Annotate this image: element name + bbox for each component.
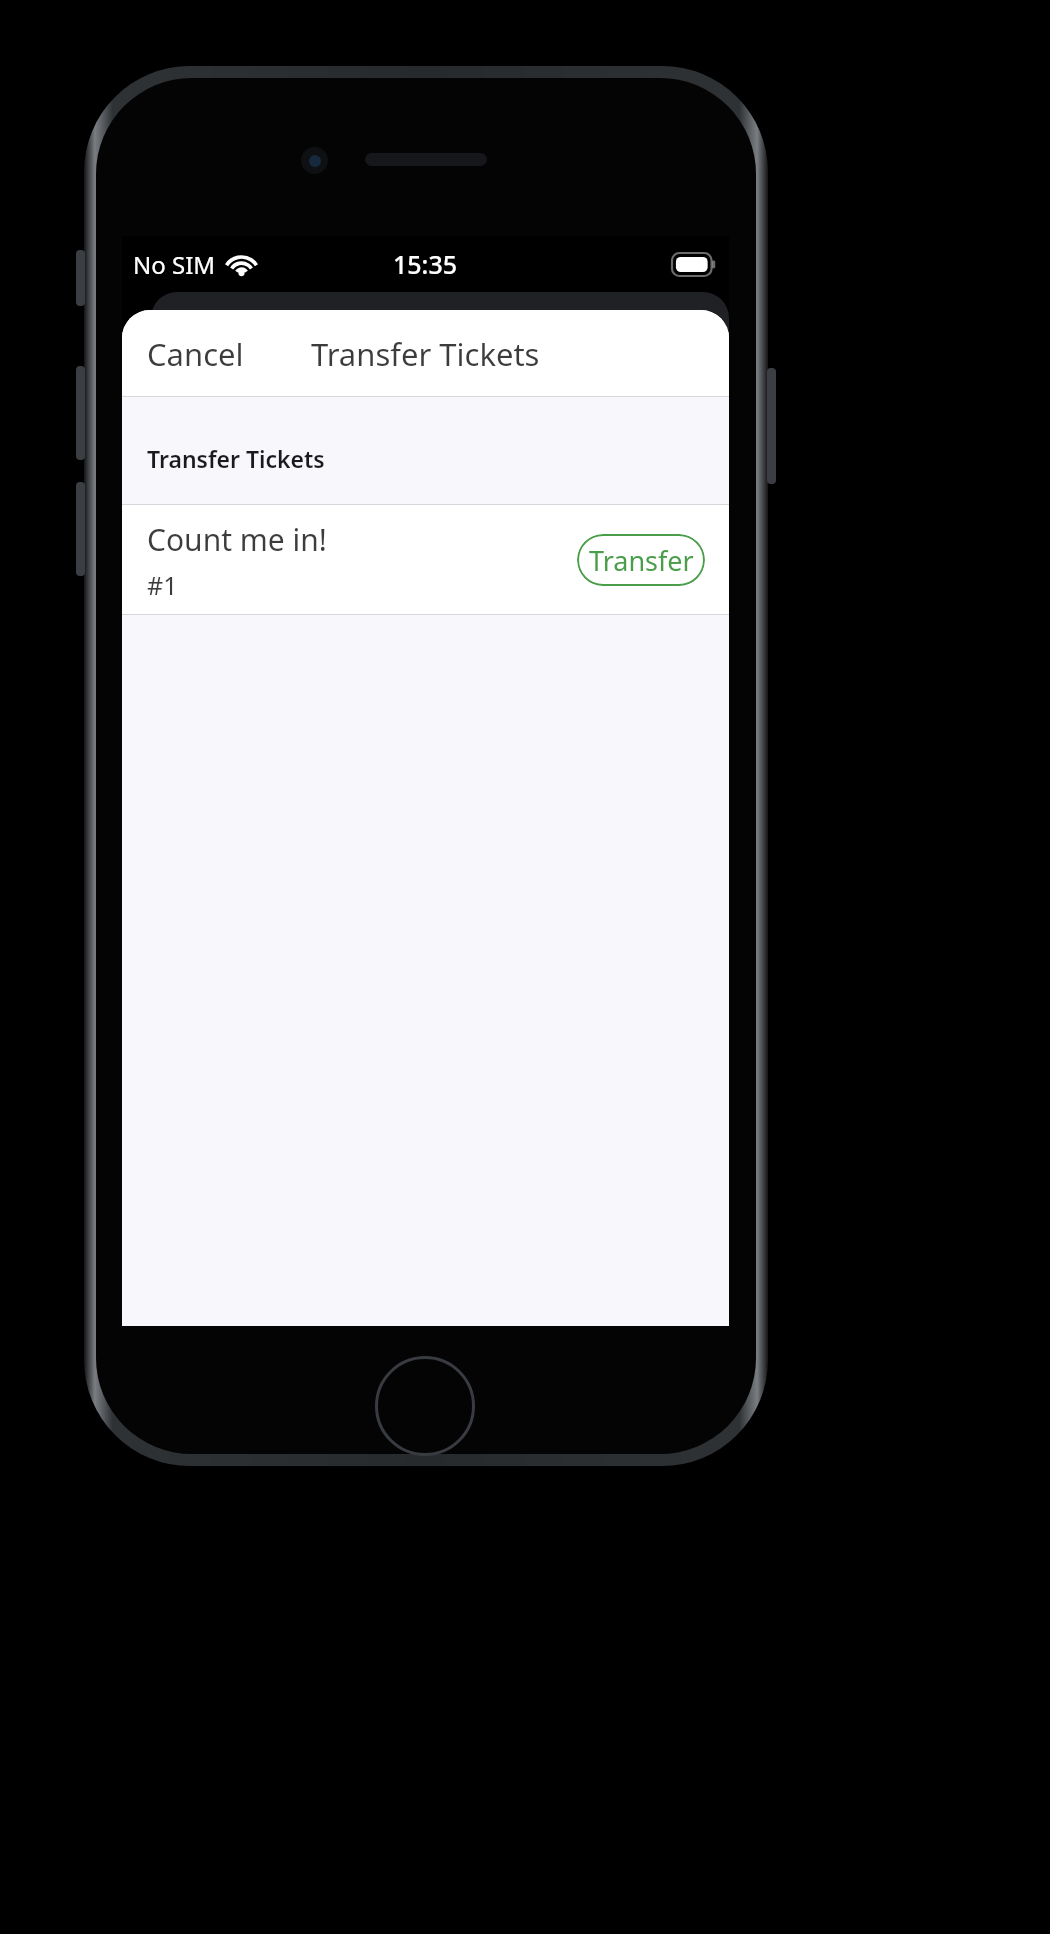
staticText: 15:35 bbox=[393, 247, 458, 281]
staticText: Count me in! bbox=[147, 519, 327, 560]
staticText: Transfer Tickets bbox=[147, 443, 325, 474]
staticText: Transfer bbox=[589, 542, 694, 579]
button[interactable]: Cancel bbox=[122, 321, 262, 387]
staticText: No SIM bbox=[133, 248, 216, 281]
staticText: Cancel bbox=[147, 333, 244, 375]
staticText: Transfer Tickets bbox=[311, 333, 540, 375]
staticText: #1 bbox=[147, 568, 178, 602]
button[interactable]: Count me in! bbox=[122, 505, 729, 615]
button[interactable]: Transfer bbox=[577, 534, 705, 586]
